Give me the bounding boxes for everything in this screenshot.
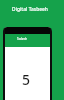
staticText: Digital Tasbeeh bbox=[0, 6, 62, 13]
button[interactable]: Tasbeeh bbox=[5, 34, 50, 47]
staticText: 5 bbox=[22, 70, 31, 89]
staticText: Tasbeeh bbox=[17, 37, 28, 41]
